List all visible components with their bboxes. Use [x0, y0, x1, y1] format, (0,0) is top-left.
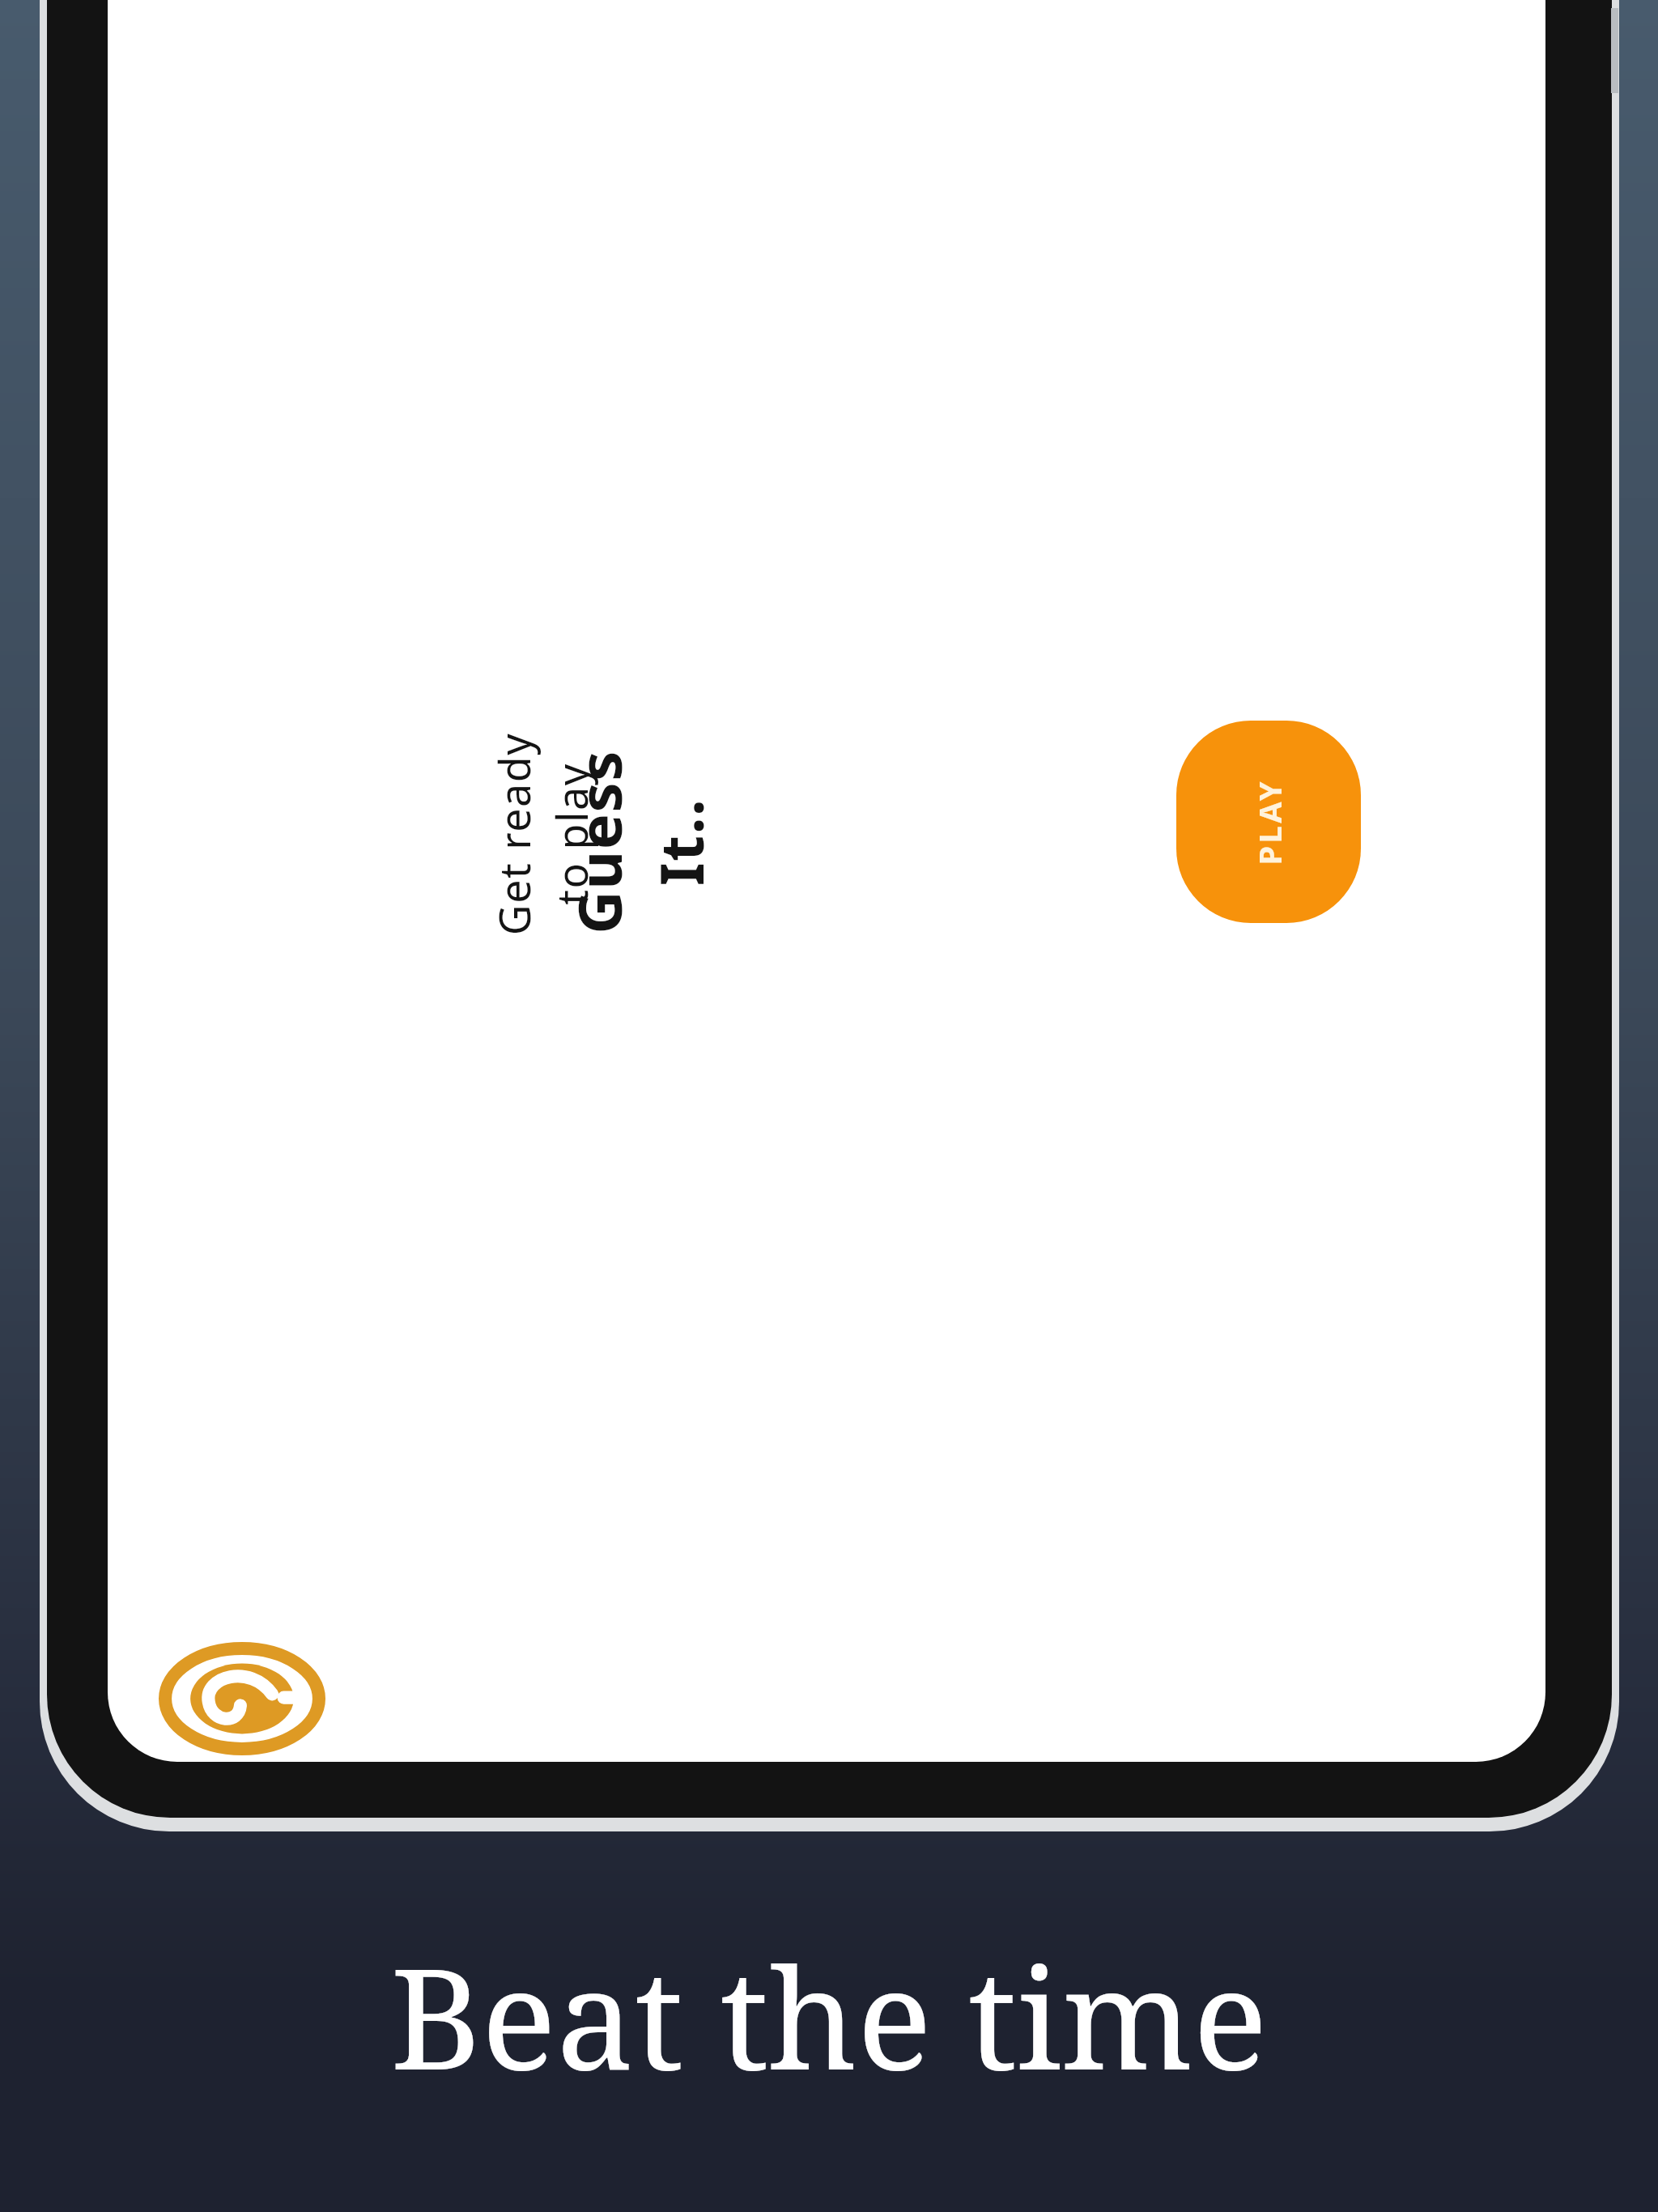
button[interactable]: PLAY: [1176, 721, 1361, 923]
staticText: PLAY: [1248, 778, 1290, 865]
staticText: Beat the time: [390, 1921, 1268, 2110]
button[interactable]: Help: [159, 1642, 325, 1755]
staticText: Get ready to play: [485, 713, 600, 955]
button[interactable]: Get ready to play: [421, 648, 664, 1020]
staticText: Guess It..: [558, 721, 721, 963]
